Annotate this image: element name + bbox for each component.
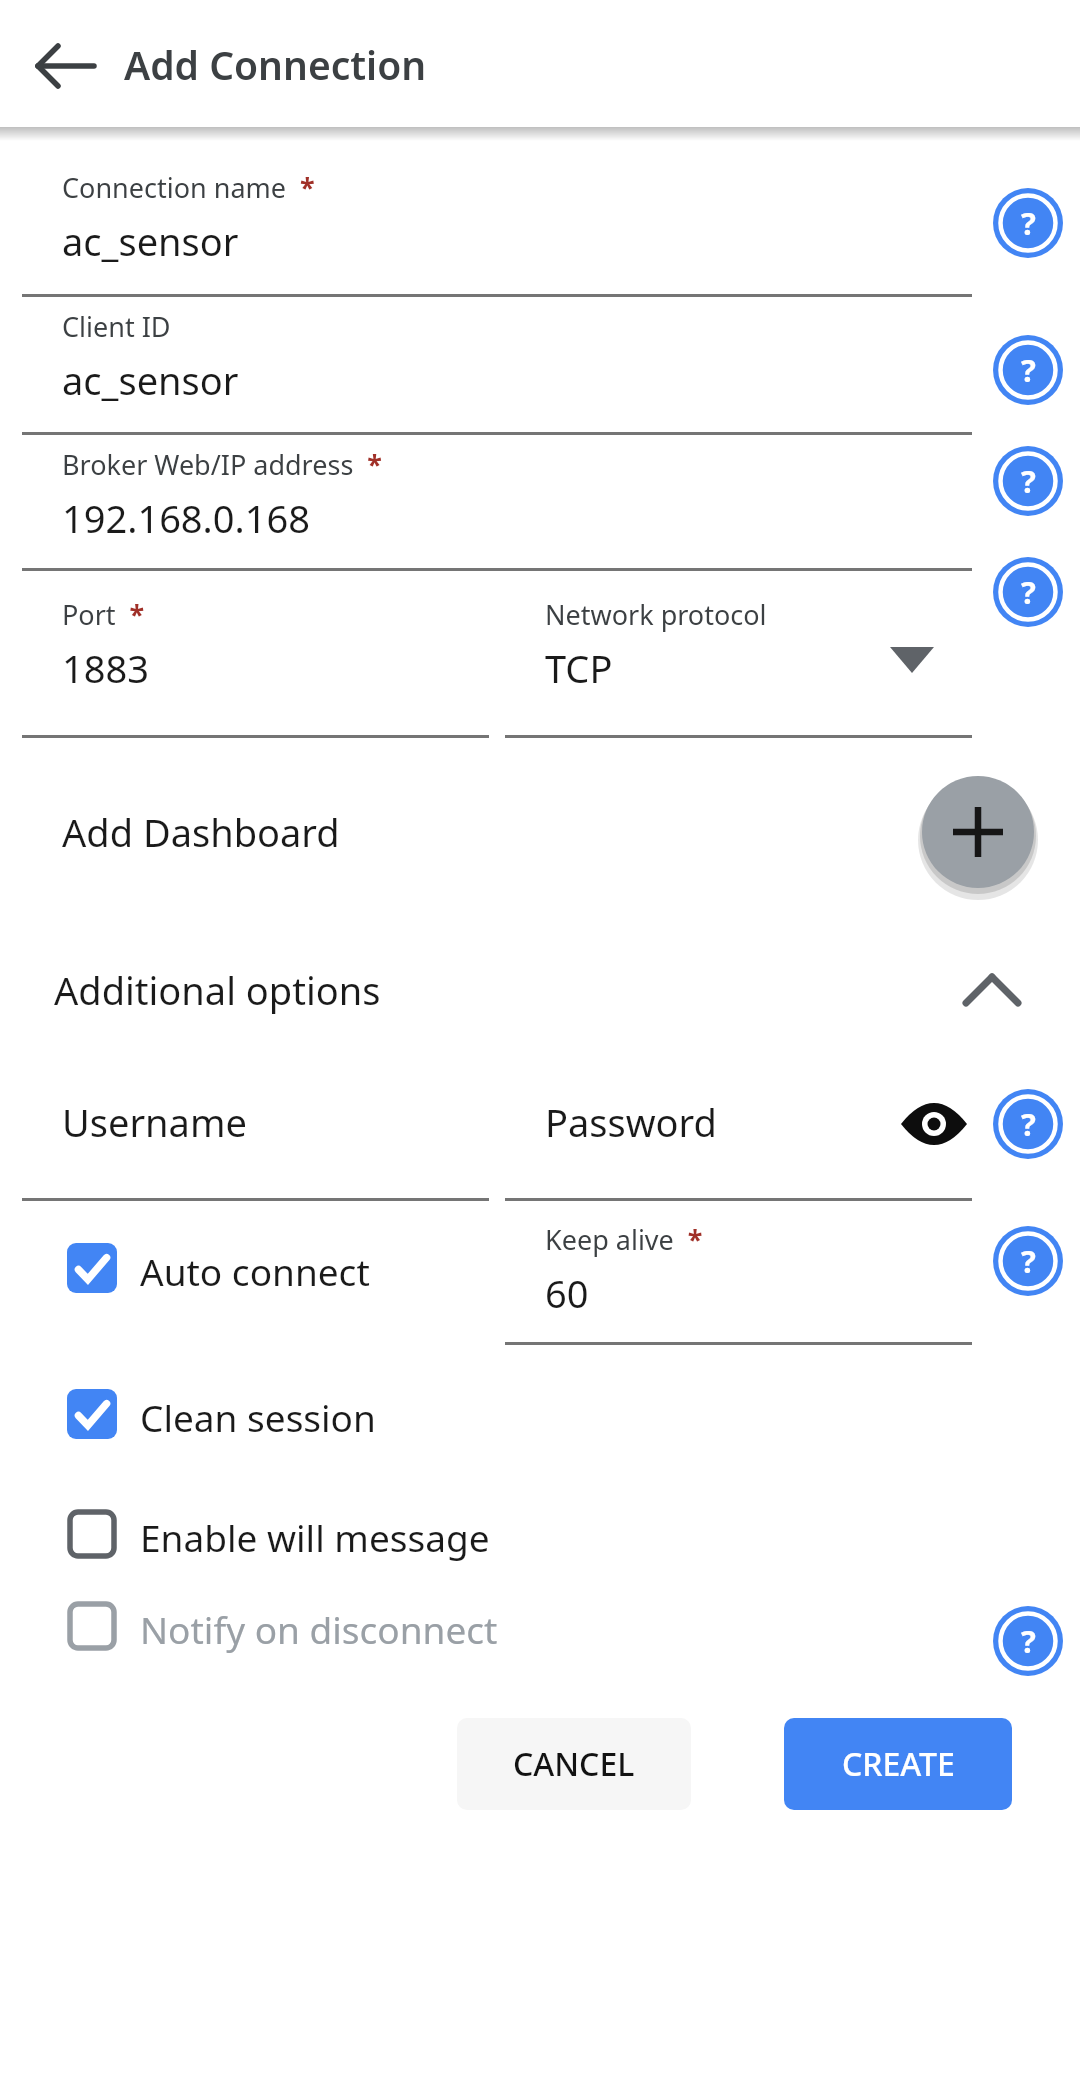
button[interactable]: Connection name * [22,155,972,293]
staticText: Clean session [140,1392,376,1442]
staticText: Enable will message [140,1512,490,1562]
button[interactable]: CANCEL [457,1718,691,1810]
staticText: 1883 [62,642,149,694]
staticText: CANCEL [513,1742,635,1786]
button[interactable]: Back [16,16,116,116]
staticText: ac_sensor [62,354,239,406]
button[interactable]: Username [22,1058,489,1198]
staticText: Auto connect [140,1246,370,1296]
button[interactable]: CREATE [784,1718,1012,1810]
staticText: Keep alive * [545,1221,703,1258]
button[interactable]: Help [989,331,1067,409]
button[interactable]: Help [989,184,1067,262]
staticText: ? [1021,1240,1036,1282]
button[interactable]: Network protocol [505,568,972,735]
button[interactable]: Client ID [22,294,972,432]
button[interactable]: Auto connect [44,1222,504,1318]
button[interactable]: Clean session [44,1368,504,1464]
staticText: Port * [62,596,145,633]
button[interactable]: Show password [888,1078,980,1170]
staticText: ? [1021,202,1036,244]
button[interactable]: Add dashboard [918,772,1038,892]
staticText: ? [1021,460,1036,502]
button[interactable]: Enable will message [44,1488,504,1584]
staticText: 192.168.0.168 [62,492,310,544]
staticText: TCP [545,642,613,694]
staticText: Client ID [62,308,171,345]
button[interactable]: Select network protocol [870,615,954,699]
staticText: ? [1021,349,1036,391]
staticText: Notify on disconnect [140,1604,498,1654]
button[interactable]: Add Dashboard [22,770,822,894]
staticText: Additional options [54,964,381,1016]
button[interactable]: Help [989,1602,1067,1680]
staticText: ? [1021,571,1036,613]
button[interactable]: Broker Web/IP address * [22,432,972,568]
staticText: ? [1021,1103,1036,1145]
staticText: Network protocol [545,596,767,633]
staticText: Connection name * [62,169,315,206]
button[interactable]: Help [989,553,1067,631]
button[interactable]: Help [989,1085,1067,1163]
staticText: 60 [545,1267,589,1319]
staticText: ? [1021,1620,1036,1662]
button[interactable]: Keep alive * [505,1205,972,1342]
button[interactable]: Help [989,442,1067,520]
button[interactable]: Notify on disconnect [44,1580,504,1676]
button[interactable]: Password [505,1058,972,1198]
staticText: Add Connection [124,38,427,91]
button[interactable]: Help [989,1222,1067,1300]
staticText: Username [62,1096,247,1148]
staticText: ac_sensor [62,215,239,267]
button[interactable]: Port * [22,568,489,735]
staticText: Password [545,1096,717,1148]
staticText: Broker Web/IP address * [62,446,383,483]
button[interactable]: Additional options [22,930,1034,1046]
staticText: Add Dashboard [62,806,340,858]
staticText: CREATE [842,1742,955,1786]
